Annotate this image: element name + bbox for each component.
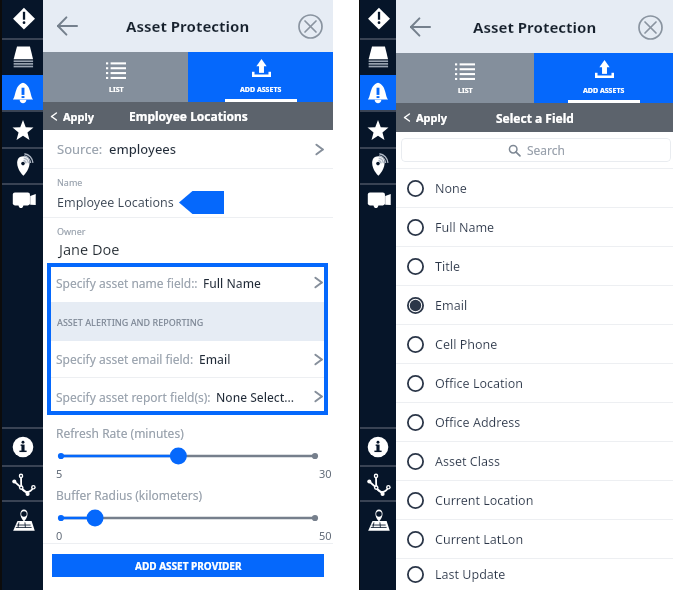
button[interactable]: ADD ASSETS	[534, 53, 673, 103]
staticText: Source:	[57, 140, 103, 158]
button[interactable]: Alerts	[2, 0, 43, 38]
staticText: Email	[435, 297, 468, 314]
button[interactable]: Current Location	[396, 481, 673, 519]
button[interactable]: Map	[360, 502, 396, 537]
button[interactable]: Close	[293, 9, 327, 43]
button[interactable]: Back	[49, 8, 85, 44]
button[interactable]: Slider	[61, 446, 315, 466]
staticText: Owner	[57, 225, 86, 237]
button[interactable]: Network	[360, 467, 396, 500]
button[interactable]: Network	[2, 467, 43, 500]
button[interactable]: Specify asset report field(s):	[47, 378, 328, 415]
staticText: Buffer Radius (kilometers)	[56, 487, 203, 503]
staticText: Office Address	[435, 414, 521, 431]
staticText: Current LatLon	[435, 531, 524, 548]
button[interactable]: Back	[402, 9, 438, 45]
button[interactable]: LIST	[43, 52, 188, 102]
button[interactable]: Favorites	[360, 112, 396, 147]
button[interactable]: Notifications	[2, 75, 43, 110]
button[interactable]: Current LatLon	[396, 520, 673, 558]
button[interactable]: Tracking	[360, 149, 396, 183]
button[interactable]: Apply	[403, 110, 448, 125]
staticText: ASSET ALERTING AND REPORTING	[57, 316, 204, 328]
button[interactable]: Tracking	[2, 149, 43, 183]
staticText: Full Name	[435, 219, 495, 236]
staticText: 30	[319, 466, 332, 481]
button[interactable]: Notifications	[360, 75, 396, 110]
button[interactable]: Specify asset name field::	[47, 263, 328, 302]
button[interactable]: Title	[396, 247, 673, 285]
staticText: 5	[56, 466, 63, 481]
staticText: Jane Doe	[59, 239, 120, 259]
staticText: 0	[56, 528, 63, 543]
button[interactable]: Info	[2, 429, 43, 465]
staticText: Apply	[416, 110, 448, 125]
button[interactable]: Apply	[50, 109, 95, 124]
staticText: Refresh Rate (minutes)	[56, 425, 184, 441]
staticText: Email	[199, 351, 231, 367]
staticText: Specify asset report field(s):	[56, 389, 211, 405]
button[interactable]: Layers	[2, 40, 43, 75]
staticText: LIST	[109, 85, 124, 95]
staticText: None	[435, 180, 467, 197]
staticText: employees	[109, 140, 177, 158]
staticText: Cell Phone	[435, 336, 498, 353]
button[interactable]: Asset Class	[396, 442, 673, 480]
button[interactable]: Cell Phone	[396, 325, 673, 363]
button[interactable]: Favorites	[2, 112, 43, 147]
staticText: ADD ASSETS	[240, 85, 282, 95]
button[interactable]: Last Update	[396, 559, 673, 590]
staticText: None Select...	[216, 389, 295, 405]
button[interactable]: LIST	[396, 53, 534, 103]
staticText: Specify asset email field:	[56, 351, 194, 367]
button[interactable]: Search	[401, 138, 671, 162]
button[interactable]: Office Address	[396, 403, 673, 441]
button[interactable]: Alerts	[360, 0, 396, 38]
staticText: Asset Protection	[126, 16, 250, 36]
button[interactable]: Video	[2, 185, 43, 220]
button[interactable]: Layers	[360, 40, 396, 75]
button[interactable]: ADD ASSET PROVIDER	[52, 554, 324, 577]
staticText: Employee Locations	[129, 108, 248, 124]
staticText: Specify asset name field::	[56, 275, 198, 291]
button[interactable]: Video	[360, 185, 396, 220]
staticText: Search	[527, 142, 565, 158]
button[interactable]: Close	[633, 10, 667, 44]
button[interactable]: Full Name	[396, 208, 673, 246]
staticText: Last Update	[435, 566, 506, 583]
button[interactable]: ADD ASSETS	[188, 52, 333, 102]
button[interactable]: Map	[2, 502, 43, 537]
staticText: Name	[57, 176, 83, 188]
staticText: 50	[319, 528, 332, 543]
staticText: Asset Class	[435, 453, 500, 470]
staticText: Apply	[63, 109, 95, 124]
staticText: Full Name	[203, 275, 261, 291]
staticText: Title	[435, 258, 460, 275]
staticText: ADD ASSETS	[583, 86, 625, 96]
button[interactable]: Office Location	[396, 364, 673, 402]
button[interactable]: Info	[360, 429, 396, 465]
button[interactable]: Source:	[43, 130, 333, 168]
staticText: Office Location	[435, 375, 524, 392]
button[interactable]: Email	[396, 286, 673, 324]
button[interactable]: None	[396, 169, 673, 207]
staticText: Employee Locations	[57, 194, 174, 211]
button[interactable]: Slider	[61, 508, 315, 528]
staticText: Current Location	[435, 492, 534, 509]
staticText: Select a Field	[496, 110, 574, 126]
staticText: Asset Protection	[473, 17, 597, 37]
staticText: ADD ASSET PROVIDER	[135, 559, 242, 573]
staticText: LIST	[458, 86, 473, 96]
button[interactable]: Specify asset email field:	[47, 341, 328, 377]
